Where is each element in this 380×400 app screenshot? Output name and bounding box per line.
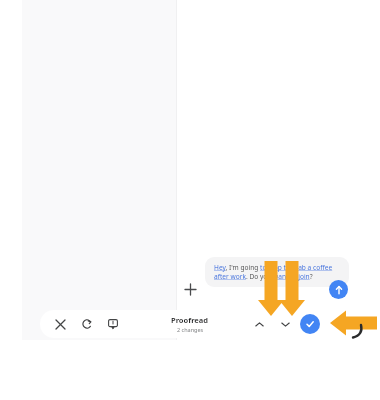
button[interactable]: Regenerate bbox=[76, 313, 98, 335]
button[interactable]: Feedback bbox=[102, 313, 124, 335]
button[interactable]: Add attachment bbox=[178, 277, 202, 301]
button[interactable]: Send bbox=[329, 280, 348, 299]
staticText: Proofread bbox=[171, 315, 209, 325]
button[interactable]: Accept all changes bbox=[300, 314, 320, 334]
staticText: 2 changes bbox=[177, 326, 204, 333]
staticText: Hey, I'm going to stop to grab a coffee … bbox=[214, 263, 340, 281]
button[interactable]: Next change bbox=[274, 313, 296, 335]
button[interactable]: Close bbox=[49, 313, 71, 335]
button[interactable]: Previous change bbox=[248, 313, 270, 335]
